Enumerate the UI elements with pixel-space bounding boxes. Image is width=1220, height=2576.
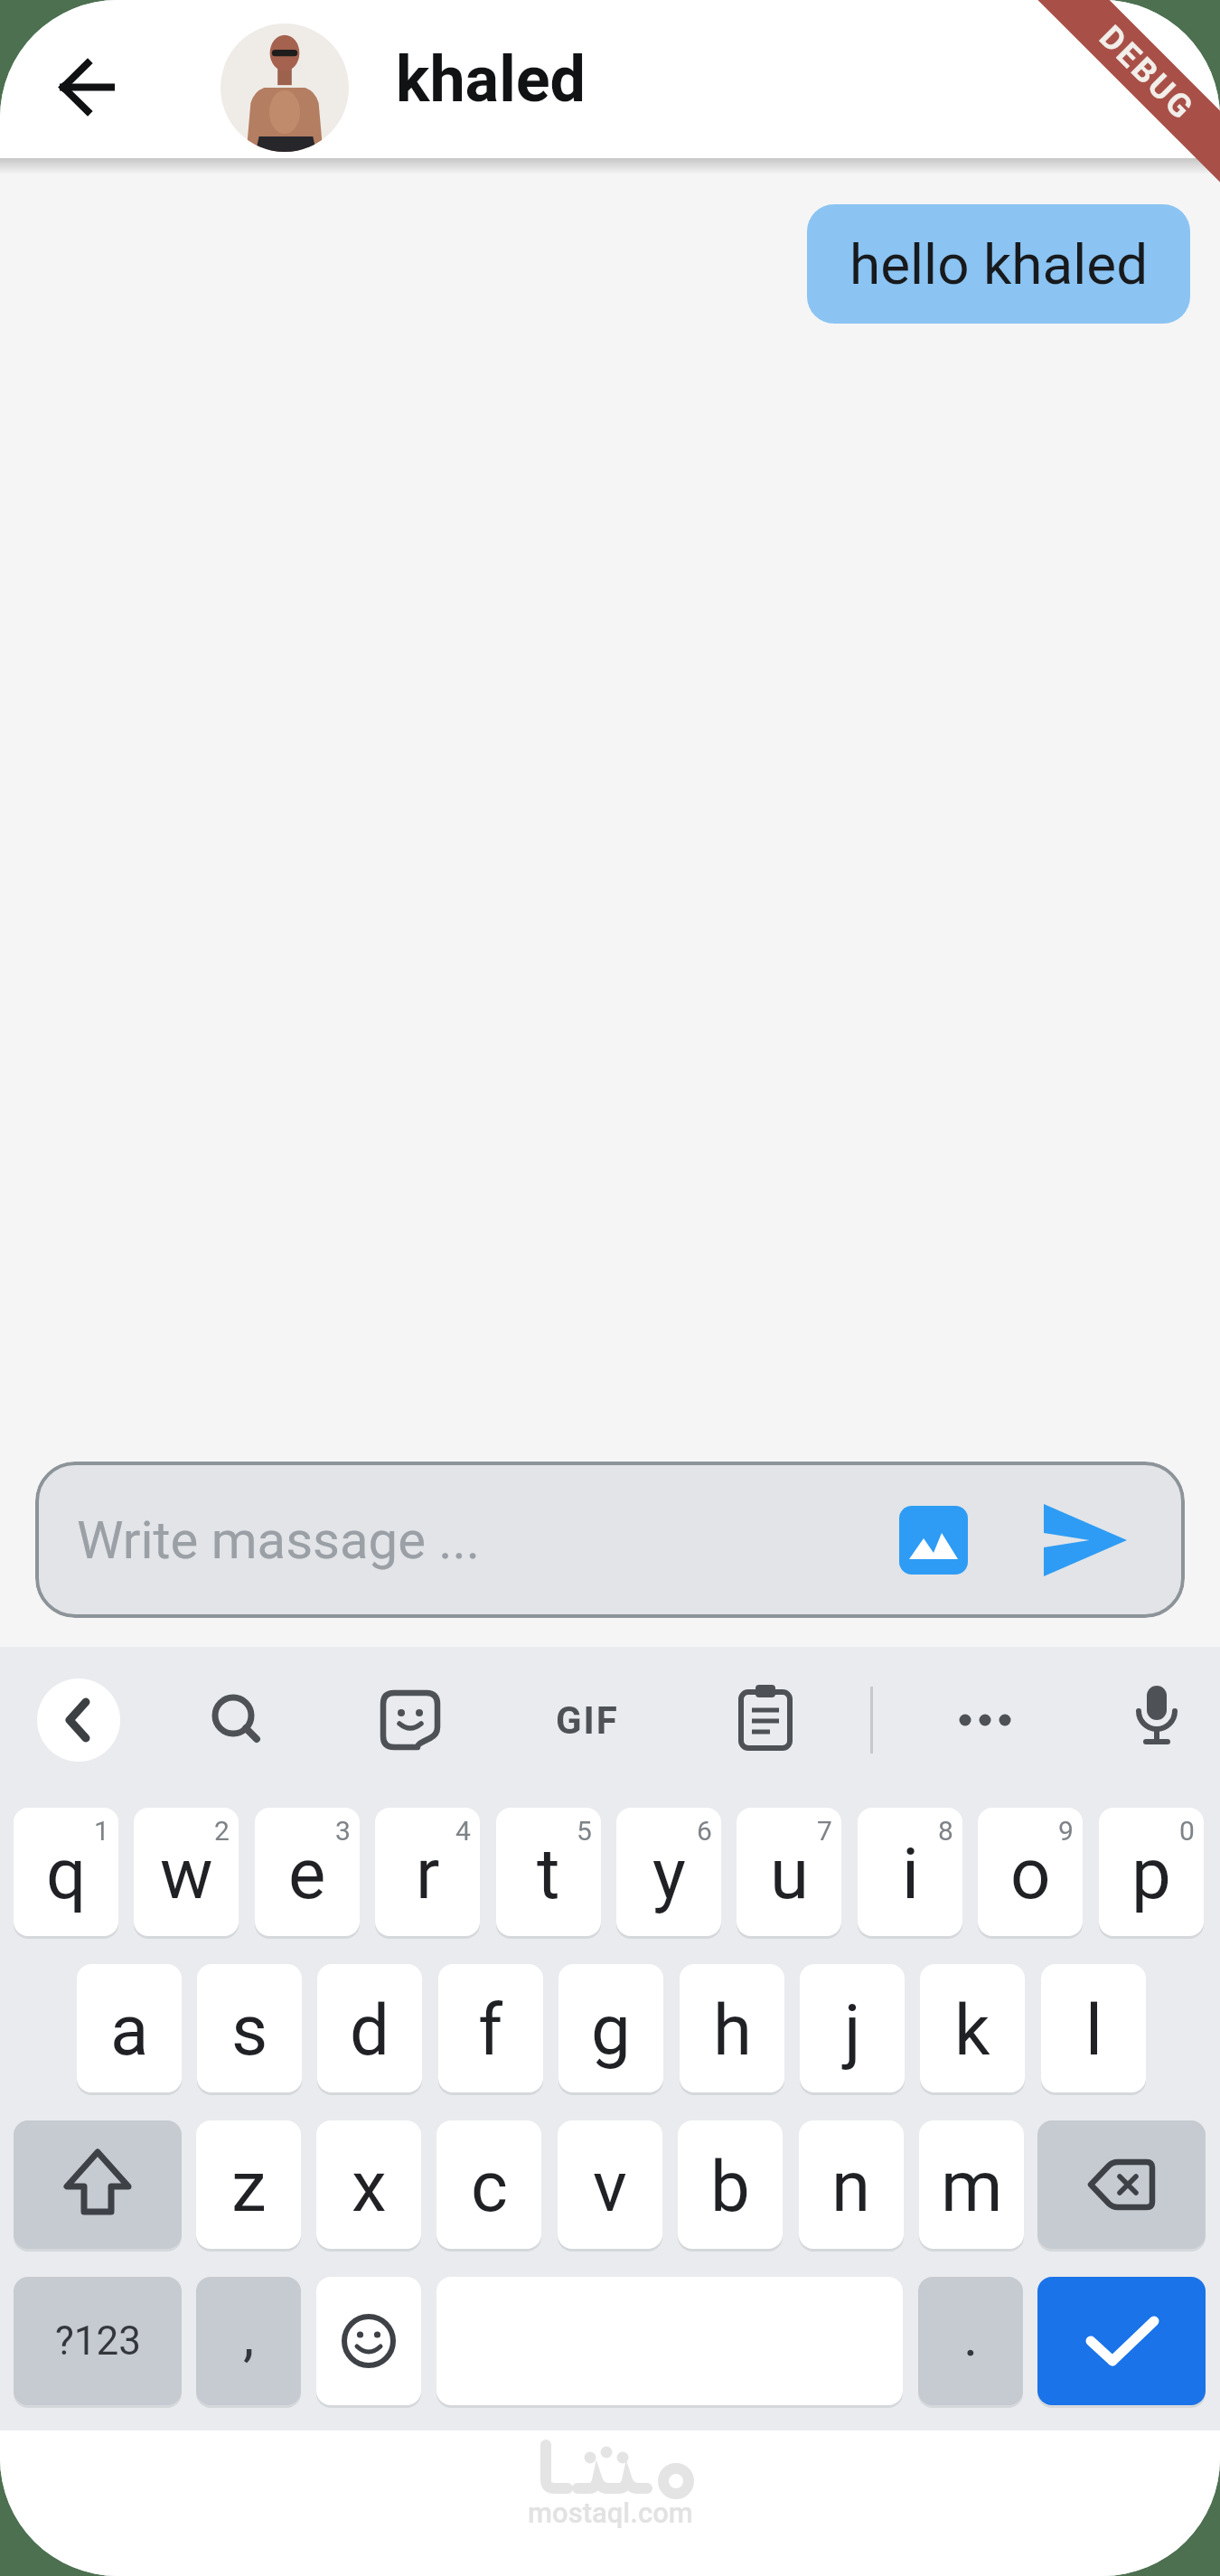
- button[interactable]: [14, 2120, 182, 2249]
- staticText: b: [710, 2146, 750, 2228]
- staticText: t: [537, 1833, 560, 1915]
- staticText: 3: [335, 1815, 351, 1847]
- button[interactable]: i: [858, 1808, 962, 1936]
- staticText: 9: [1058, 1815, 1074, 1847]
- button[interactable]: b: [678, 2120, 783, 2249]
- button[interactable]: e: [255, 1808, 360, 1936]
- staticText: s: [231, 1989, 268, 2072]
- button[interactable]: r: [375, 1808, 480, 1936]
- button[interactable]: f: [438, 1964, 543, 2092]
- button[interactable]: ?123: [14, 2277, 182, 2405]
- staticText: 5: [577, 1815, 592, 1847]
- button[interactable]: k: [920, 1964, 1025, 2092]
- staticText: Write massage ...: [77, 1509, 481, 1571]
- staticText: 2: [214, 1815, 230, 1847]
- button[interactable]: d: [317, 1964, 422, 2092]
- staticText: y: [652, 1833, 686, 1915]
- button[interactable]: m: [919, 2120, 1024, 2249]
- staticText: h: [713, 1989, 752, 2072]
- button[interactable]: t: [496, 1808, 601, 1936]
- staticText: f: [478, 1989, 503, 2072]
- button[interactable]: [43, 45, 130, 130]
- staticText: g: [591, 1989, 631, 2072]
- button[interactable]: [1037, 2277, 1206, 2405]
- staticText: i: [902, 1833, 919, 1915]
- staticText: 8: [938, 1815, 953, 1847]
- button[interactable]: [1037, 2120, 1206, 2249]
- staticText: e: [288, 1833, 326, 1915]
- button[interactable]: z: [196, 2120, 301, 2249]
- staticText: d: [350, 1989, 389, 2072]
- staticText: m: [941, 2146, 1003, 2228]
- button[interactable]: Write massage ...: [35, 1462, 1185, 1618]
- button[interactable]: l: [1041, 1964, 1146, 2092]
- button[interactable]: w: [134, 1808, 239, 1936]
- staticText: z: [231, 2146, 267, 2228]
- button[interactable]: n: [799, 2120, 904, 2249]
- button[interactable]: j: [800, 1964, 905, 2092]
- button[interactable]: s: [197, 1964, 302, 2092]
- button[interactable]: [1124, 1684, 1189, 1749]
- staticText: u: [770, 1833, 809, 1915]
- staticText: p: [1131, 1833, 1171, 1915]
- staticText: r: [416, 1833, 440, 1915]
- staticText: .: [963, 2303, 979, 2369]
- staticText: a: [110, 1989, 149, 2072]
- button[interactable]: [378, 1688, 443, 1753]
- staticText: DEBUG: [1092, 18, 1202, 128]
- staticText: o: [1010, 1833, 1051, 1915]
- staticText: 1: [94, 1815, 109, 1847]
- button[interactable]: p: [1099, 1808, 1204, 1936]
- staticText: ?123: [55, 2317, 141, 2364]
- staticText: 0: [1179, 1815, 1195, 1847]
- staticText: GIF: [556, 1698, 619, 1743]
- button[interactable]: u: [737, 1808, 841, 1936]
- button[interactable]: [204, 1688, 269, 1753]
- staticText: hello khaled: [849, 231, 1149, 297]
- button[interactable]: a: [77, 1964, 182, 2092]
- staticText: 6: [697, 1815, 712, 1847]
- button[interactable]: [37, 1678, 120, 1762]
- button[interactable]: [734, 1685, 799, 1750]
- button[interactable]: hello khaled: [807, 204, 1190, 324]
- button[interactable]: [1044, 1504, 1127, 1576]
- button[interactable]: [940, 1695, 1030, 1745]
- staticText: x: [352, 2146, 387, 2228]
- staticText: n: [831, 2146, 871, 2228]
- staticText: q: [46, 1833, 87, 1915]
- staticText: 7: [817, 1815, 832, 1847]
- button[interactable]: o: [978, 1808, 1083, 1936]
- button[interactable]: y: [616, 1808, 721, 1936]
- button[interactable]: q: [14, 1808, 118, 1936]
- button[interactable]: x: [316, 2120, 421, 2249]
- staticText: k: [954, 1989, 990, 2072]
- staticText: j: [844, 1989, 861, 2072]
- staticText: c: [471, 2146, 508, 2228]
- staticText: 4: [455, 1815, 471, 1847]
- button[interactable]: v: [558, 2120, 662, 2249]
- staticText: mostaql.com: [528, 2496, 693, 2529]
- button[interactable]: .: [918, 2277, 1023, 2405]
- staticText: w: [160, 1833, 213, 1915]
- staticText: l: [1085, 1989, 1103, 2072]
- staticText: v: [593, 2146, 627, 2228]
- button[interactable]: [316, 2277, 421, 2405]
- button[interactable]: ,: [196, 2277, 301, 2405]
- button[interactable]: h: [680, 1964, 784, 2092]
- button[interactable]: g: [558, 1964, 663, 2092]
- button[interactable]: [221, 24, 349, 152]
- staticText: ,: [243, 2303, 255, 2369]
- staticText: khaled: [396, 42, 586, 117]
- button[interactable]: GIF: [539, 1695, 636, 1745]
- button[interactable]: [899, 1506, 968, 1575]
- button[interactable]: c: [436, 2120, 541, 2249]
